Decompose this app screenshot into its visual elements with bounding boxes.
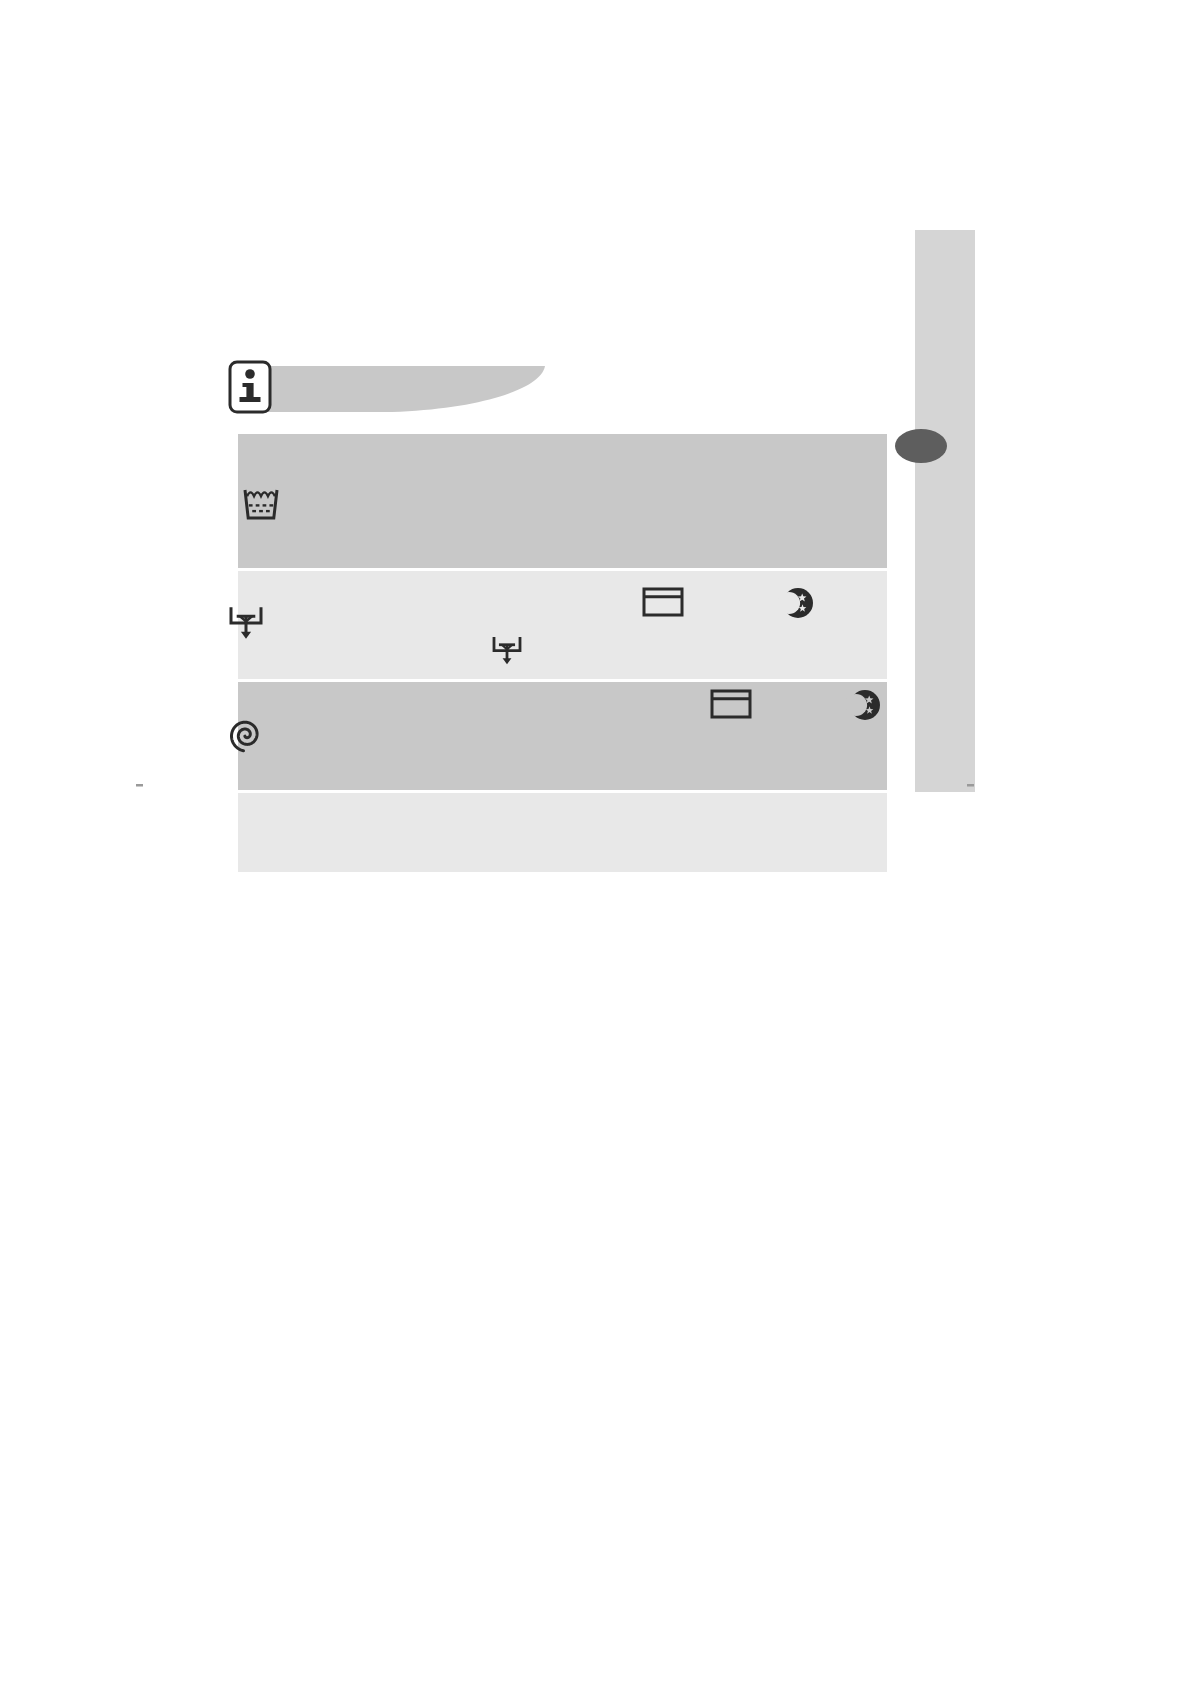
button[interactable]: Laundry care symbols page — [0, 0, 1190, 1684]
